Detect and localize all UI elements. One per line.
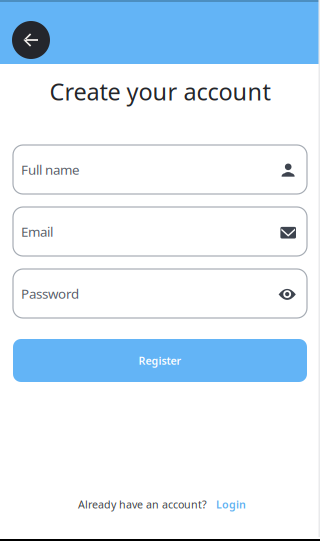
staticText: Password [21, 285, 79, 302]
button[interactable]: Register [13, 339, 307, 382]
staticText: Full name [21, 161, 80, 178]
staticText: Email [21, 223, 53, 240]
staticText: Already have an account? [78, 497, 207, 511]
button[interactable]: Full name [13, 145, 307, 194]
staticText: Login [216, 497, 246, 511]
staticText: Create your account [49, 75, 270, 107]
staticText: Register [138, 353, 181, 368]
button[interactable]: Password [13, 269, 307, 318]
button[interactable]: Email [13, 207, 307, 256]
button[interactable]: Login [216, 497, 246, 511]
button[interactable]: Back [12, 21, 50, 59]
